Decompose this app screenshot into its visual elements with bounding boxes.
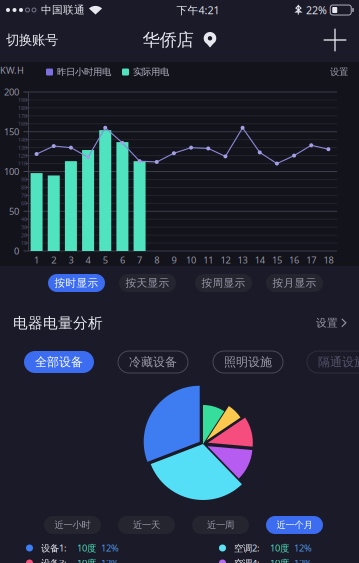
staticText: 设置 <box>316 316 338 329</box>
staticText: 12% <box>294 557 312 563</box>
staticText: 6 <box>120 254 125 266</box>
staticText: 电器电量分析 <box>13 314 103 332</box>
button[interactable]: 切换账号 <box>0 20 68 60</box>
staticText: 1 <box>34 254 39 266</box>
button[interactable]: 华侨店 <box>142 20 216 60</box>
staticText: 中国联通 <box>41 3 85 16</box>
staticText: 10 <box>21 239 27 247</box>
staticText: 7 <box>137 254 142 266</box>
button[interactable]: 近一个月 <box>266 516 323 534</box>
staticText: 16 <box>289 254 299 266</box>
staticText: 实际用电 <box>133 66 169 78</box>
staticText: 按周显示 <box>201 276 245 289</box>
staticText: 12% <box>101 542 119 554</box>
staticText: 隔通设施 <box>318 355 359 369</box>
button[interactable]: 按月显示 <box>266 274 323 292</box>
button[interactable]: 近一小时 <box>44 516 101 534</box>
button[interactable]: 照明设施 <box>213 351 283 373</box>
staticText: 22% <box>306 3 327 17</box>
staticText: 18 <box>323 254 333 266</box>
staticText: 按月显示 <box>272 276 316 289</box>
staticText: 180 <box>18 104 27 111</box>
staticText: 空调2: <box>234 542 260 554</box>
staticText: 空调4: <box>234 557 260 563</box>
button[interactable]: 按天显示 <box>119 274 176 292</box>
staticText: 10度 <box>77 542 96 554</box>
staticText: 5 <box>103 254 108 266</box>
staticText: 昨日小时用电 <box>57 66 111 78</box>
staticText: 9 <box>171 254 176 266</box>
staticText: 按时显示 <box>54 276 98 289</box>
staticText: 70 <box>21 192 27 199</box>
button[interactable]: 冷藏设备 <box>118 351 188 373</box>
staticText: 4 <box>86 254 91 266</box>
staticText: 120 <box>18 152 27 159</box>
button[interactable]: 添加 <box>311 20 359 60</box>
staticText: 90 <box>21 176 27 183</box>
staticText: 13 <box>238 254 248 266</box>
staticText: 设备1: <box>41 542 67 554</box>
staticText: 近一天 <box>133 519 160 531</box>
staticText: 30 <box>21 224 27 231</box>
staticText: 80 <box>21 184 27 191</box>
button[interactable]: 按时显示 <box>48 274 105 292</box>
button[interactable]: 设置 <box>316 313 347 333</box>
staticText: 近一个月 <box>276 519 312 531</box>
staticText: 12% <box>101 557 119 563</box>
staticText: 20 <box>21 232 27 239</box>
staticText: 2 <box>51 254 56 266</box>
staticText: 切换账号 <box>6 32 58 48</box>
staticText: 12% <box>294 542 312 554</box>
staticText: 华侨店 <box>142 29 193 51</box>
button[interactable]: 全部设备 <box>24 351 94 373</box>
staticText: 近一周 <box>207 519 234 531</box>
staticText: 8 <box>154 254 159 266</box>
staticText: 17 <box>306 254 316 266</box>
button[interactable]: 隔通设施 <box>307 351 359 373</box>
staticText: 200 <box>4 86 19 98</box>
staticText: 10度 <box>270 542 289 554</box>
staticText: 10度 <box>270 557 289 563</box>
staticText: 按天显示 <box>125 276 169 289</box>
staticText: 130 <box>18 144 27 151</box>
staticText: 冷藏设备 <box>129 355 177 369</box>
staticText: 14 <box>255 254 265 266</box>
button[interactable]: 近一天 <box>118 516 175 534</box>
staticText: 近一小时 <box>54 519 90 531</box>
staticText: 设备3: <box>41 557 67 563</box>
staticText: 12 <box>220 254 230 266</box>
staticText: 下午4:21 <box>176 3 219 17</box>
button[interactable]: 设置 <box>330 64 359 80</box>
staticText: KW.H <box>0 64 24 76</box>
staticText: 170 <box>18 112 27 119</box>
staticText: 设置 <box>330 66 348 78</box>
staticText: 10 <box>186 254 196 266</box>
staticText: 150 <box>4 126 19 138</box>
staticText: 40 <box>21 216 27 223</box>
staticText: 140 <box>18 136 27 143</box>
staticText: 照明设施 <box>224 355 272 369</box>
staticText: 全部设备 <box>35 355 83 369</box>
staticText: 50 <box>9 205 19 217</box>
staticText: 0 <box>14 245 19 257</box>
staticText: 60 <box>21 200 27 207</box>
staticText: 160 <box>18 120 27 127</box>
staticText: 110 <box>18 160 27 167</box>
button[interactable]: 按周显示 <box>195 274 252 292</box>
staticText: 190 <box>18 96 27 103</box>
staticText: 10度 <box>77 557 96 563</box>
button[interactable]: 近一周 <box>192 516 249 534</box>
staticText: 11 <box>203 254 213 266</box>
staticText: 100 <box>4 165 19 178</box>
staticText: 15 <box>272 254 282 266</box>
staticText: 3 <box>68 254 73 266</box>
